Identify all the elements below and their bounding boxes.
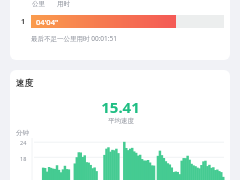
staticText: 公里 [32,0,45,8]
staticText: 用时 [57,0,70,8]
button[interactable]: 速度 [10,70,230,180]
staticText: 分钟 [16,129,29,137]
staticText: 18 [20,155,27,162]
button[interactable]: 公里 [10,0,230,60]
staticText: 04'04" [36,17,59,27]
staticText: 平均速度 [108,117,134,125]
staticText: 速度 [16,78,33,89]
staticText: 15.41 [101,97,140,117]
staticText: 1 [21,17,26,27]
staticText: 最后不足一公里用时 00:01:51 [31,34,117,43]
staticText: 24 [20,139,27,146]
